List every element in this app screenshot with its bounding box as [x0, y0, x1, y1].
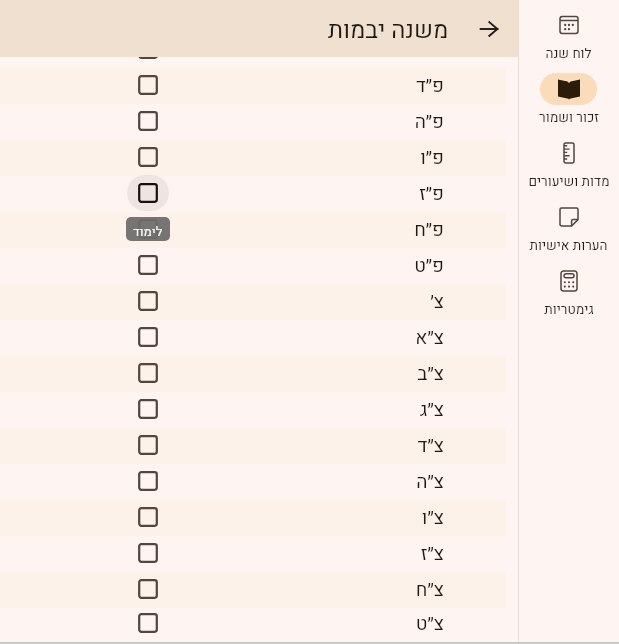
staticText: צ״ט [415, 610, 444, 638]
button[interactable]: צ״ח [0, 572, 506, 608]
staticText: פ״ו [420, 144, 444, 172]
staticText: פ״ז [419, 180, 444, 208]
button[interactable]: צ״ד [0, 428, 506, 464]
button[interactable]: צ״א [0, 320, 506, 356]
staticText: צ״ד [417, 432, 444, 460]
button[interactable]: צ״ט [0, 608, 506, 640]
staticText: פ״ב [415, 0, 444, 28]
button[interactable]: צ״ו [0, 500, 506, 536]
staticText: צ״ב [417, 360, 444, 388]
button[interactable]: הערות אישיות [518, 201, 619, 265]
button[interactable]: צ״ב [0, 356, 506, 392]
staticText: צ׳ [430, 288, 444, 316]
staticText: פ״ט [414, 252, 444, 280]
staticText: גימטריות [544, 300, 594, 316]
button[interactable]: צ׳ [0, 284, 506, 320]
staticText: צ״ו [421, 504, 444, 532]
button[interactable]: גימטריות [518, 265, 619, 329]
staticText: צ״ה [416, 468, 444, 496]
button[interactable]: מדות ושיעורים [518, 137, 619, 201]
button[interactable]: פ״ו [0, 140, 506, 176]
staticText: זכור ושמור [539, 108, 599, 124]
staticText: לימוד [133, 222, 163, 241]
button[interactable]: זכור ושמור [518, 73, 619, 137]
button[interactable]: פ״ט [0, 248, 506, 284]
button[interactable]: פ״ח [0, 212, 506, 248]
staticText: לוח שנה [545, 44, 592, 60]
staticText: פ״ח [414, 216, 444, 244]
button[interactable]: פ״ז [0, 176, 506, 212]
staticText: פ״ג [418, 36, 444, 64]
staticText: פ״ה [414, 108, 444, 136]
button[interactable]: לוח שנה [518, 9, 619, 73]
button[interactable]: צ״ז [0, 536, 506, 572]
button[interactable]: Back [465, 5, 513, 53]
staticText: צ״ז [420, 540, 444, 568]
staticText: משנה יבמות [328, 13, 449, 48]
staticText: צ״ג [420, 396, 444, 424]
button[interactable]: צ״ה [0, 464, 506, 500]
staticText: פ״ד [415, 72, 444, 100]
button[interactable]: פ״ד [0, 68, 506, 104]
button[interactable]: פ״ב [0, 0, 506, 32]
staticText: מדות ושיעורים [528, 172, 610, 188]
button[interactable]: פ״ה [0, 104, 506, 140]
button[interactable]: פ״ג [0, 32, 506, 68]
staticText: הערות אישיות [529, 236, 608, 252]
staticText: צ״ח [415, 576, 444, 604]
staticText: צ״א [415, 324, 444, 352]
button[interactable]: צ״ג [0, 392, 506, 428]
